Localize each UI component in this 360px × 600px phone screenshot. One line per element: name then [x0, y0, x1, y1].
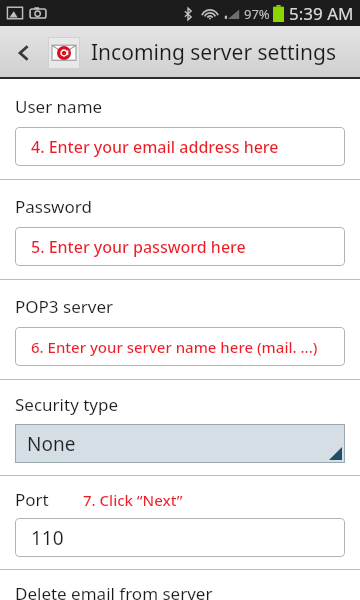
staticText: 4. Enter your email address here [31, 136, 279, 158]
staticText: Security type [15, 393, 119, 416]
staticText: 7. Click “Next” [83, 490, 183, 510]
staticText: None [27, 431, 76, 457]
staticText: Delete email from server [15, 582, 213, 600]
staticText: Incoming server settings [91, 38, 336, 67]
staticText: Port [15, 488, 49, 511]
button[interactable]: 6. Enter your server name here (mail. ..… [15, 327, 345, 366]
staticText: POP3 server [15, 295, 113, 318]
button[interactable]: 110 [15, 518, 345, 557]
staticText: User name [15, 95, 103, 118]
staticText: 6. Enter your server name here (mail. ..… [31, 337, 318, 357]
button[interactable]: Back [0, 26, 48, 79]
button[interactable]: None [15, 424, 345, 463]
staticText: 5:39 AM [289, 2, 354, 25]
staticText: Password [15, 195, 92, 218]
button[interactable]: 4. Enter your email address here [15, 127, 345, 166]
button[interactable]: 5. Enter your password here [15, 227, 345, 266]
staticText: 97% [244, 5, 270, 23]
staticText: 5. Enter your password here [31, 236, 246, 258]
staticText: 110 [31, 525, 64, 551]
